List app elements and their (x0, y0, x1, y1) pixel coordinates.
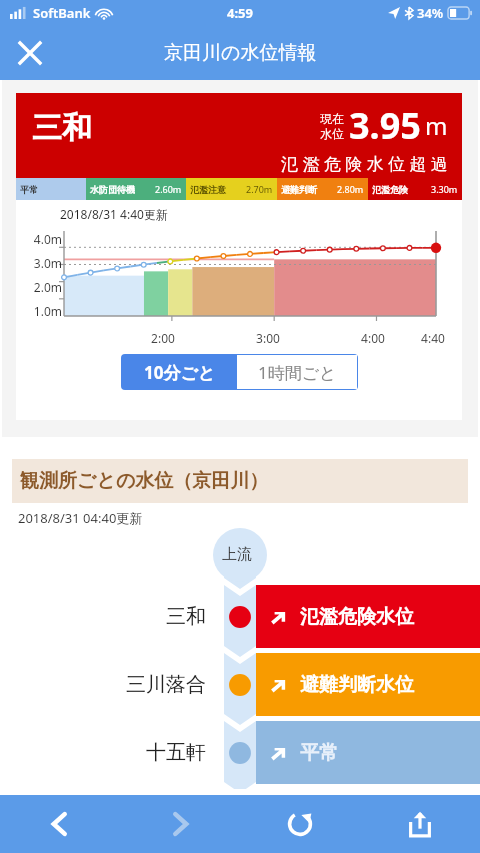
button[interactable]: 十五軒 (0, 721, 480, 784)
staticText: 京田川の水位情報 (164, 41, 317, 65)
staticText: SoftBank (33, 4, 91, 22)
staticText: 4:40 (404, 330, 462, 346)
button[interactable]: 三和 (0, 585, 480, 648)
staticText: 十五軒 (0, 740, 206, 765)
button[interactable]: 1時間ごと (237, 355, 357, 389)
staticText: 34% (417, 4, 444, 22)
staticText: 1時間ごと (258, 361, 337, 384)
staticText: 2:00 (132, 330, 194, 346)
staticText: 上流 (222, 545, 252, 564)
staticText: 2.80m (337, 183, 364, 195)
staticText: m (425, 109, 448, 142)
staticText: 3:00 (237, 330, 299, 346)
button[interactable]: Back (0, 795, 120, 853)
staticText: 水位 (320, 126, 344, 141)
staticText: 氾 濫 危 険 水 位 超 過 (281, 152, 448, 175)
staticText: 避難判断 (281, 184, 317, 195)
staticText: 3.30m (431, 183, 458, 195)
staticText: 現在 (320, 111, 344, 126)
button[interactable]: Forward (120, 795, 240, 853)
staticText: 3.95 (349, 101, 421, 150)
staticText: 2018/8/31 4:40更新 (60, 206, 168, 222)
staticText: 氾濫危険水位 (300, 605, 414, 629)
staticText: 4:59 (227, 4, 253, 22)
staticText: 4:00 (342, 330, 404, 346)
staticText: 平常 (300, 741, 338, 765)
staticText: 3.0m (18, 255, 62, 271)
button[interactable]: 三川落合 (0, 653, 480, 716)
staticText: 平常 (20, 184, 38, 195)
staticText: 1.0m (18, 303, 62, 319)
staticText: 2018/8/31 04:40更新 (18, 509, 143, 527)
button[interactable]: 10分ごと (122, 355, 237, 389)
button[interactable]: Close (8, 31, 52, 75)
staticText: 10分ごと (144, 361, 216, 384)
staticText: 氾濫注意 (190, 184, 226, 195)
staticText: 三和 (32, 109, 92, 147)
button[interactable]: Share (360, 795, 480, 853)
staticText: 2.70m (246, 183, 273, 195)
staticText: 避難判断水位 (300, 673, 414, 697)
staticText: 三和 (0, 604, 206, 629)
button[interactable]: Reload (240, 795, 360, 853)
staticText: 2.0m (18, 279, 62, 295)
staticText: 氾濫危険 (372, 184, 408, 195)
staticText: 4.0m (18, 231, 62, 247)
staticText: 2.60m (155, 183, 182, 195)
staticText: 水防団待機 (90, 184, 135, 195)
staticText: 三川落合 (0, 672, 206, 697)
staticText: 観測所ごとの水位（京田川） (20, 469, 269, 493)
